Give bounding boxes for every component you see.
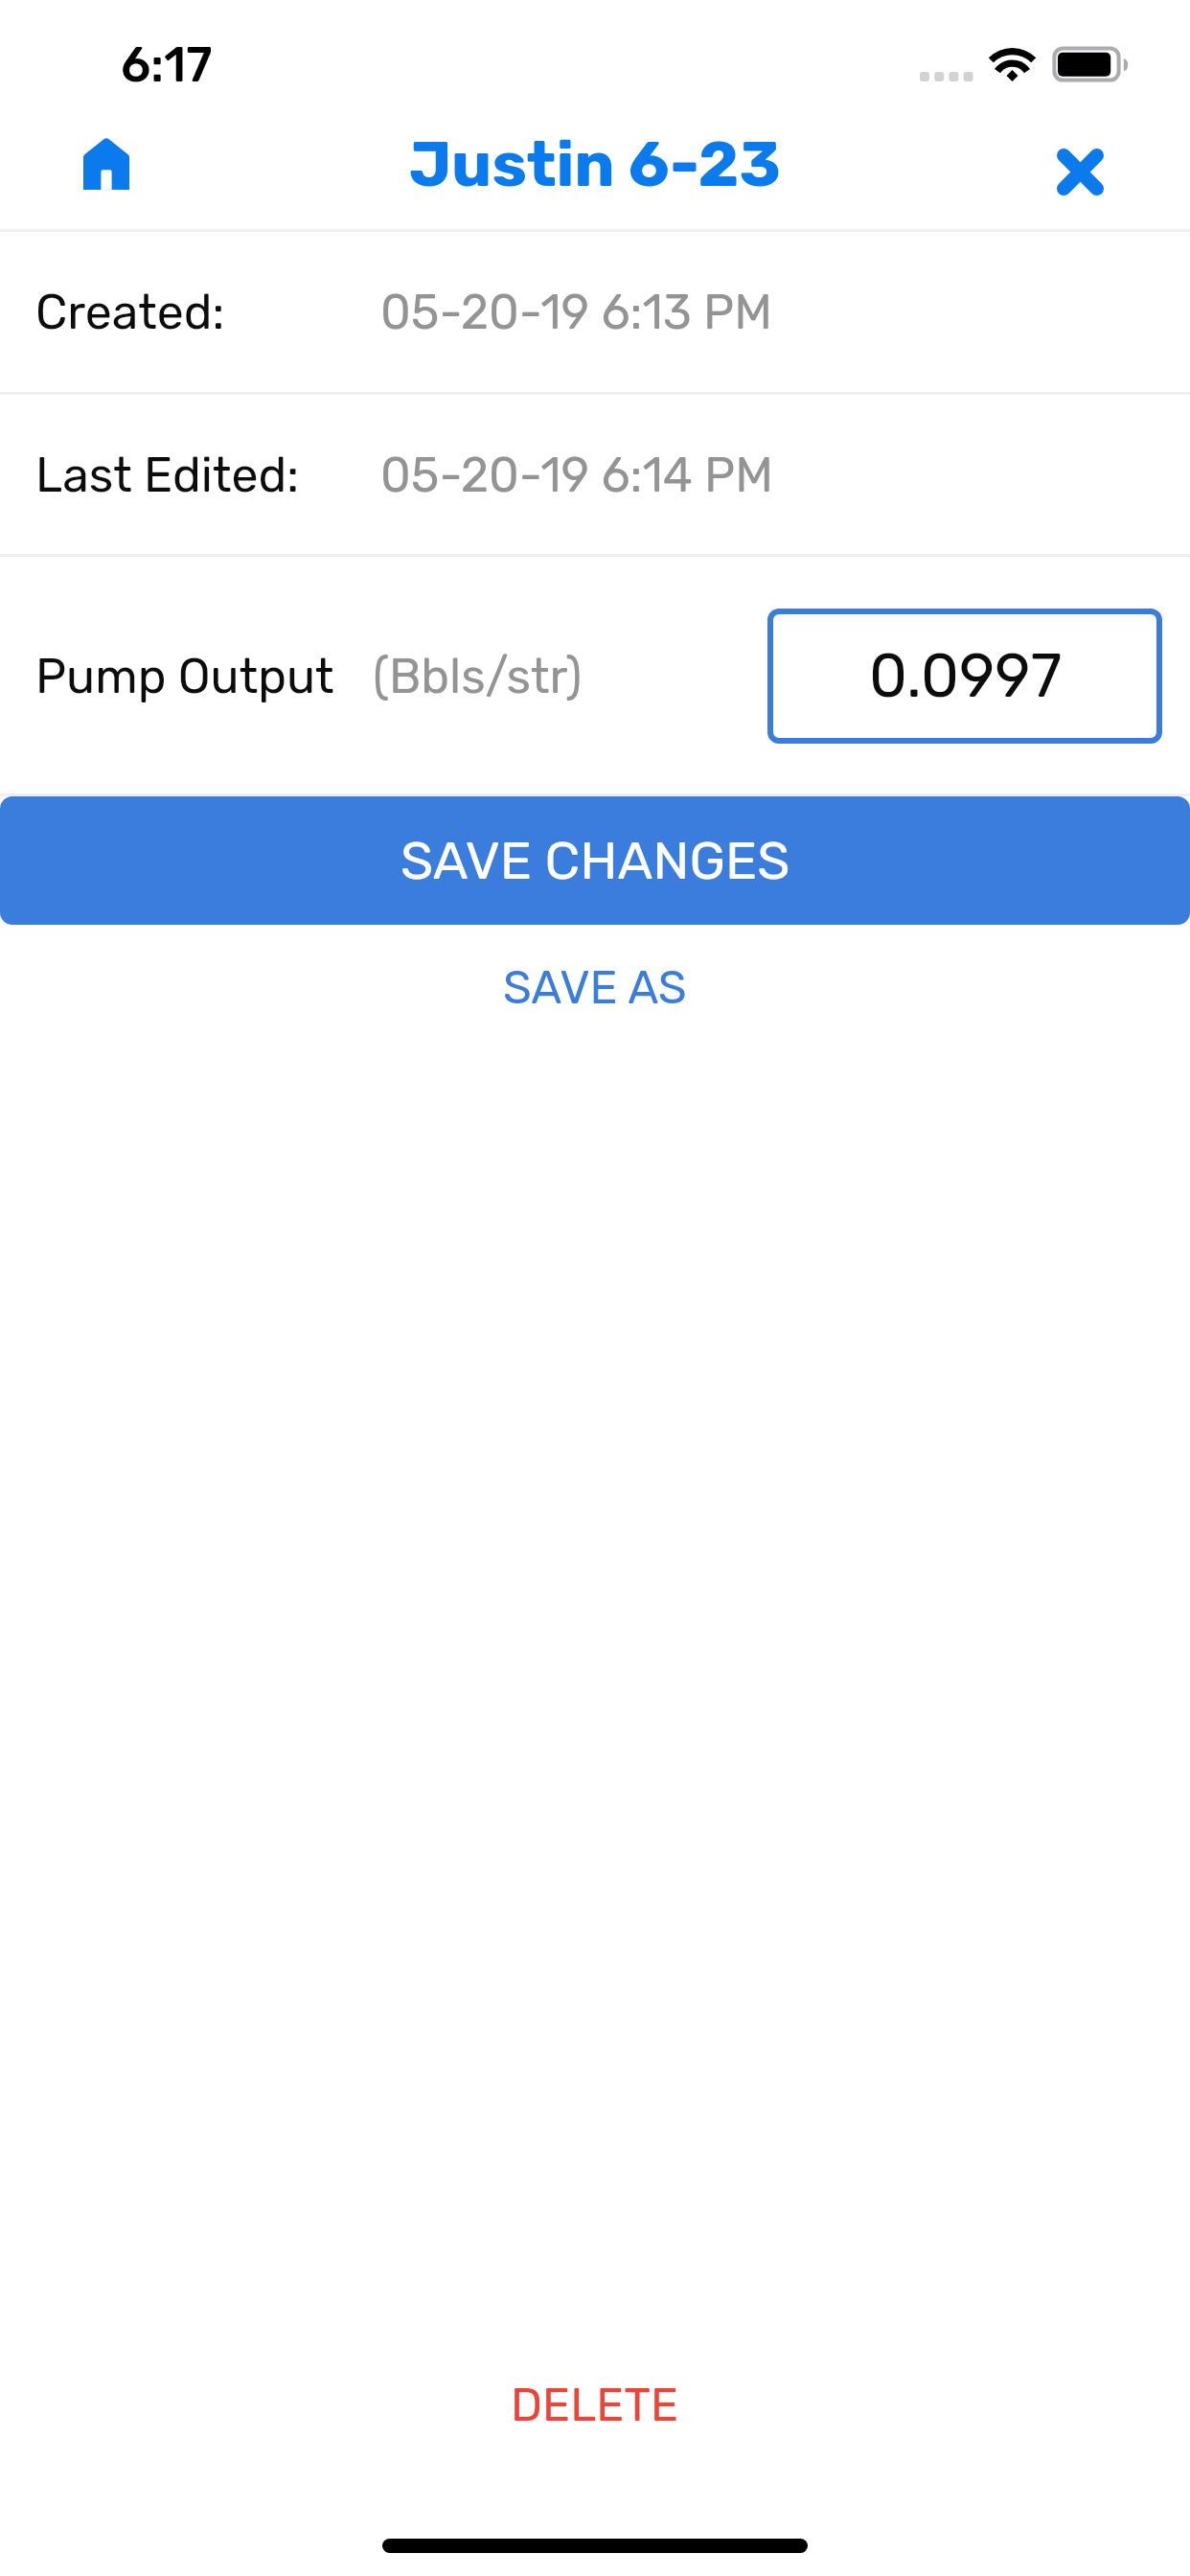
button[interactable]: Last Edited: bbox=[0, 395, 1190, 554]
button[interactable]: 0.0997 bbox=[767, 609, 1162, 744]
button[interactable]: SAVE CHANGES bbox=[0, 796, 1190, 925]
button[interactable]: Home bbox=[52, 109, 161, 218]
staticText: SAVE CHANGES bbox=[400, 830, 790, 892]
staticText: 05-20-19 6:13 PM bbox=[380, 284, 772, 340]
staticText: Pump Output bbox=[35, 648, 334, 704]
staticText: Last Edited: bbox=[35, 447, 299, 503]
button[interactable]: Created: bbox=[0, 232, 1190, 392]
button[interactable]: Close bbox=[1025, 117, 1134, 226]
staticText: Justin 6-23 bbox=[409, 126, 781, 201]
staticText: (Bbls/str) bbox=[373, 648, 583, 704]
staticText: 05-20-19 6:14 PM bbox=[380, 447, 773, 503]
button[interactable]: SAVE AS bbox=[0, 925, 1190, 1049]
button[interactable]: DELETE bbox=[0, 2342, 1190, 2467]
staticText: 6:17 bbox=[121, 36, 213, 93]
staticText: 0.0997 bbox=[869, 640, 1062, 712]
staticText: DELETE bbox=[511, 2378, 679, 2432]
staticText: Created: bbox=[35, 284, 225, 340]
staticText: SAVE AS bbox=[503, 960, 687, 1015]
